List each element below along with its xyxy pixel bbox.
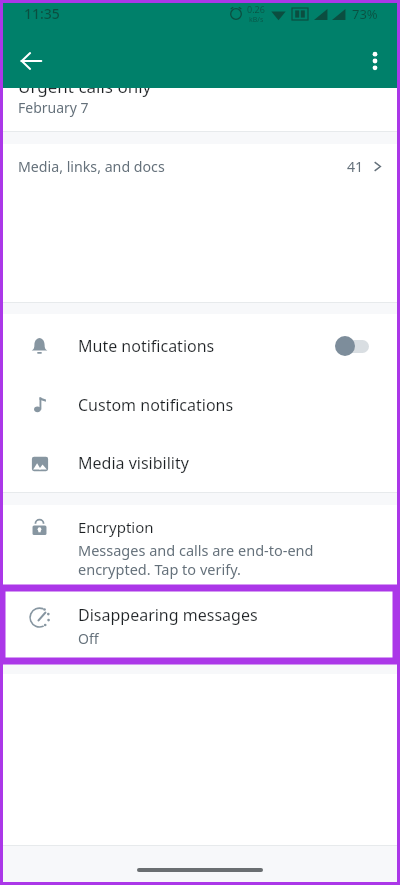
button[interactable]: Media, links, and docs	[0, 144, 400, 188]
staticText: February 7	[18, 98, 89, 117]
button[interactable]: Custom notifications	[0, 375, 400, 434]
button[interactable]: Encryption	[0, 505, 400, 591]
button[interactable]: More options	[350, 30, 400, 91]
button[interactable]: Media visibility	[0, 434, 400, 492]
staticText: 73%	[352, 5, 378, 23]
button[interactable]: Back	[0, 30, 62, 91]
button[interactable]: Mute notifications toggle	[335, 334, 369, 358]
staticText: Mute notifications	[78, 335, 215, 357]
button[interactable]: Disappearing messages	[0, 591, 400, 661]
staticText: Urgent calls only	[18, 75, 152, 98]
staticText: Media, links, and docs	[18, 157, 165, 176]
staticText: Messages and calls are end-to-end encryp…	[78, 540, 314, 579]
staticText: Off	[78, 629, 99, 648]
staticText: kB/s	[249, 15, 264, 25]
staticText: Media visibility	[78, 452, 189, 474]
staticText: Disappearing messages	[78, 604, 258, 626]
staticText: 11:35	[24, 4, 60, 23]
staticText: 0.26	[247, 3, 265, 15]
staticText: 41	[347, 157, 364, 176]
staticText: Custom notifications	[78, 394, 234, 416]
button[interactable]: Mute notifications	[0, 316, 400, 375]
staticText: Encryption	[78, 517, 154, 537]
